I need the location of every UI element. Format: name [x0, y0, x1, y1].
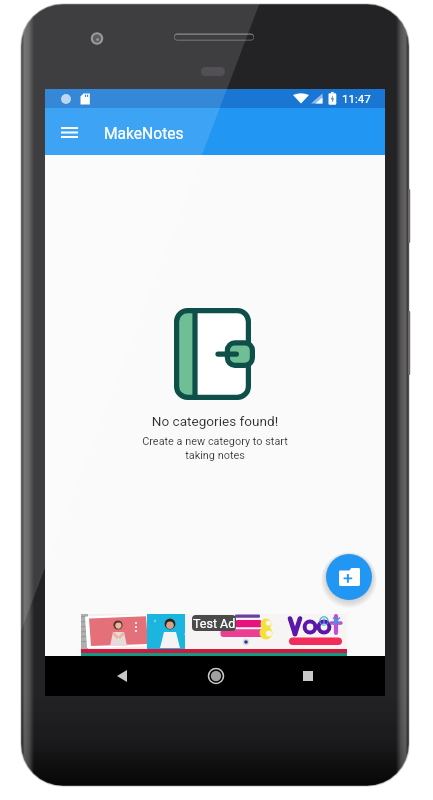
staticText: MakeNotes	[104, 125, 184, 143]
button[interactable]: Advertisement	[81, 614, 347, 656]
staticText: Create a new category to start taking no…	[45, 435, 385, 462]
button[interactable]: Add category	[326, 554, 372, 600]
staticText: 11:47	[342, 92, 371, 105]
staticText: Test Ad	[193, 616, 236, 631]
button[interactable]: Open navigation drawer	[51, 114, 87, 150]
staticText: No categories found!	[45, 413, 385, 429]
